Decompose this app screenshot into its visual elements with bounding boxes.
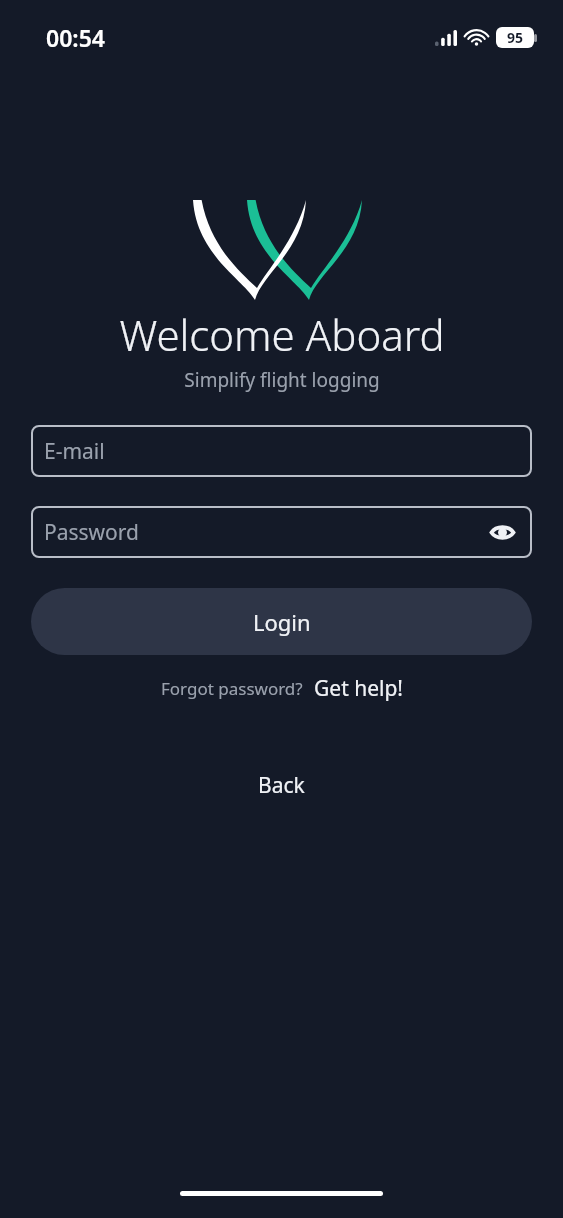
staticText: Login [253, 607, 311, 637]
staticText: 95 [507, 28, 524, 47]
staticText: Forgot password? [161, 677, 303, 700]
staticText: Get help! [314, 674, 403, 703]
button[interactable]: Show password [480, 510, 524, 554]
staticText: Welcome Aboard [119, 306, 445, 363]
button[interactable]: Password [31, 506, 532, 558]
staticText: Password [44, 518, 139, 547]
button[interactable]: Get help! [314, 670, 403, 707]
button[interactable]: Back [234, 765, 329, 806]
staticText: Simplify flight logging [184, 367, 380, 393]
button[interactable]: E-mail [31, 425, 532, 477]
staticText: E-mail [44, 437, 105, 466]
staticText: 00:54 [46, 22, 105, 53]
staticText: Back [258, 771, 305, 800]
button[interactable]: Login [31, 588, 532, 655]
